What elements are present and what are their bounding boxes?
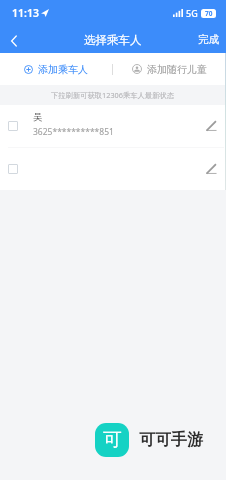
button[interactable]: Edit (0, 148, 226, 190)
button[interactable]: 吴 (0, 105, 226, 147)
staticText: 添加随行儿童 (147, 63, 207, 76)
button[interactable]: Edit (198, 148, 224, 190)
staticText: 11:13 (12, 6, 39, 20)
staticText: 3625**********851 (33, 126, 114, 138)
staticText: 选择乘车人 (84, 33, 142, 47)
button[interactable]: Back (0, 26, 30, 53)
button[interactable]: 添加随行儿童 (113, 53, 226, 85)
staticText: 完成 (198, 33, 219, 46)
staticText: 下拉刷新可获取12306乘车人最新状态 (51, 90, 175, 100)
staticText: 可可手游 (139, 430, 203, 450)
button[interactable]: 完成 (198, 26, 219, 53)
button[interactable]: 添加乘车人 (0, 53, 112, 85)
staticText: 吴 (33, 111, 43, 123)
staticText: 70 (205, 9, 213, 18)
button[interactable]: Edit (198, 105, 224, 147)
staticText: 可 (103, 428, 122, 452)
staticText: 5G (186, 7, 198, 19)
staticText: 添加乘车人 (38, 63, 88, 76)
